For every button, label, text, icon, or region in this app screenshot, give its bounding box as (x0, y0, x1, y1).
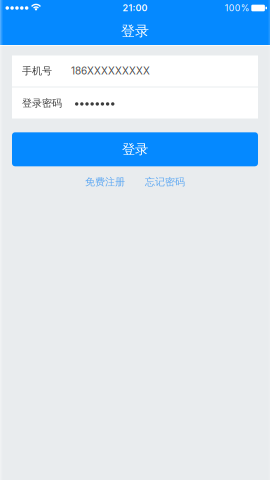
staticText: 186XXXXXXXXX (71, 65, 150, 77)
staticText: 登录 (122, 141, 148, 158)
button[interactable]: 手机号 186XXXXXXXXX (12, 55, 258, 87)
staticText: 100% (225, 3, 250, 13)
button[interactable]: 登录密码 (12, 87, 258, 119)
button[interactable]: 免费注册 (85, 176, 125, 188)
staticText: 登录 (121, 22, 149, 40)
staticText: 忘记密码 (145, 175, 185, 188)
button[interactable]: 登录 (12, 132, 258, 166)
staticText: 21:00 (122, 2, 147, 13)
staticText: 免费注册 (85, 175, 125, 188)
staticText: 手机号 (22, 65, 52, 77)
button[interactable]: 忘记密码 (145, 176, 185, 188)
staticText: 登录密码 (22, 97, 62, 109)
